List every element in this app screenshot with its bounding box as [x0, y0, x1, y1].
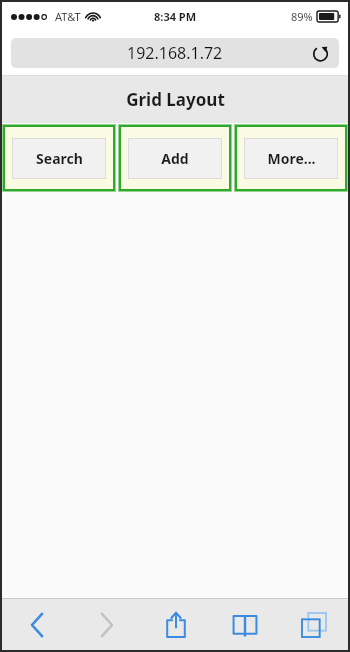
staticText: Add: [161, 149, 189, 168]
staticText: More...: [267, 149, 316, 168]
staticText: Search: [36, 149, 83, 168]
staticText: 192.168.1.72: [127, 42, 223, 64]
button[interactable]: 192.168.1.72: [11, 38, 339, 68]
button[interactable]: Search: [5, 127, 113, 189]
button[interactable]: Tabs: [279, 599, 348, 650]
staticText: 8:34 PM: [154, 9, 197, 24]
button[interactable]: Add: [121, 127, 229, 189]
button[interactable]: Reload: [307, 40, 333, 66]
button[interactable]: More...: [237, 127, 345, 189]
staticText: AT&T: [55, 9, 81, 24]
button[interactable]: Share: [141, 599, 210, 650]
button[interactable]: Bookmarks: [210, 599, 279, 650]
staticText: 89%: [291, 9, 313, 24]
staticText: Grid Layout: [126, 88, 225, 111]
button[interactable]: Forward: [72, 599, 141, 650]
button[interactable]: Back: [2, 599, 72, 650]
